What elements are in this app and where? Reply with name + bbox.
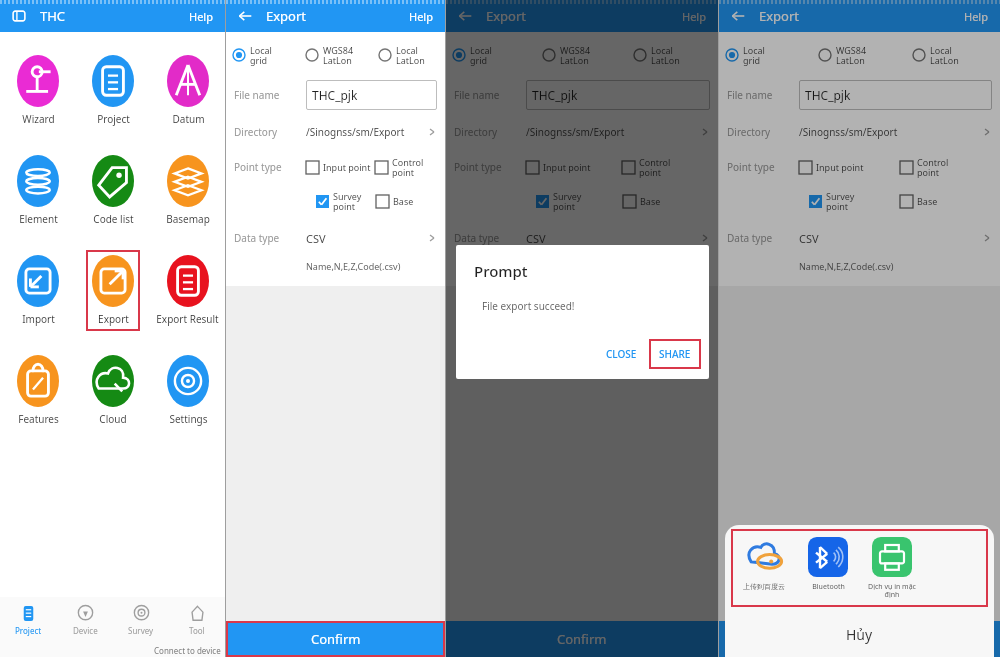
button[interactable]: Confirm [228, 623, 443, 655]
staticText: /Sinognss/sm/Export [306, 125, 405, 139]
staticText: Survey point [553, 190, 582, 212]
staticText: Input point [816, 161, 864, 173]
staticText: Project [97, 112, 130, 126]
staticText: Base [393, 195, 414, 207]
button[interactable]: Control point [900, 150, 992, 184]
button[interactable]: Back [454, 5, 476, 27]
button[interactable]: WGS84 LatLon [812, 38, 906, 72]
staticText: Element [19, 212, 58, 226]
button[interactable]: CLOSE [596, 341, 647, 367]
button[interactable]: Help [960, 5, 992, 28]
staticText: File name [234, 88, 306, 102]
button[interactable]: Directory [727, 118, 992, 146]
button[interactable]: Features [11, 350, 65, 431]
button[interactable]: Data type [727, 224, 992, 252]
button[interactable]: Input point [306, 150, 375, 184]
button[interactable]: Survey point [316, 184, 376, 218]
staticText: Name,N,E,Z,Code(.csv) [306, 260, 401, 272]
staticText: Tool [189, 625, 205, 636]
button[interactable]: Device [57, 597, 113, 643]
staticText: Survey point [826, 190, 855, 212]
staticText: Dịch vụ in mặc định [868, 582, 916, 599]
button[interactable]: Local LatLon [906, 38, 1000, 72]
button[interactable]: Hủy [725, 611, 994, 657]
button[interactable]: THC_pjk [306, 80, 437, 110]
staticText: Control point [392, 156, 424, 178]
staticText: CSV [799, 231, 819, 246]
staticText: Input point [543, 161, 591, 173]
button[interactable]: Back [727, 5, 749, 27]
button[interactable]: Dịch vụ in mặc định [860, 537, 924, 599]
button[interactable]: Survey [113, 597, 169, 643]
button[interactable]: Tool [169, 597, 225, 643]
staticText: Control point [639, 156, 671, 178]
staticText: File export succeed! [482, 299, 575, 313]
button[interactable]: Base [900, 184, 992, 218]
button[interactable]: Help [678, 5, 710, 28]
staticText: WGS84 LatLon [836, 44, 867, 66]
staticText: Data type [234, 231, 306, 245]
button[interactable]: Project [86, 50, 140, 131]
staticText: Point type [727, 160, 799, 174]
button[interactable]: Bluetooth [796, 537, 860, 592]
button[interactable]: Survey point [536, 184, 623, 218]
button[interactable]: Wizard [11, 50, 65, 131]
button[interactable]: Survey point [809, 184, 900, 218]
button[interactable]: Control point [622, 150, 710, 184]
button[interactable]: Input point [799, 150, 900, 184]
button[interactable]: Base [376, 184, 437, 218]
button[interactable]: Control point [375, 150, 437, 184]
button[interactable]: Element [11, 150, 65, 231]
staticText: /Sinognss/sm/Export [799, 125, 898, 139]
button[interactable]: Input point [526, 150, 622, 184]
staticText: Survey [128, 625, 154, 636]
staticText: Point type [454, 160, 526, 174]
button[interactable]: Data type [454, 224, 710, 252]
button[interactable]: Local grid [446, 38, 536, 72]
button[interactable]: Local LatLon [372, 38, 445, 72]
button[interactable]: Basemap [160, 150, 216, 231]
staticText: THC [40, 7, 66, 25]
button[interactable]: Cloud [86, 350, 140, 431]
staticText: Local grid [250, 44, 272, 66]
staticText: Local LatLon [930, 44, 959, 66]
button[interactable]: Local grid [719, 38, 812, 72]
staticText: Point type [234, 160, 306, 174]
button[interactable]: 上传到百度云 [731, 537, 796, 591]
staticText: Project [15, 625, 42, 636]
button[interactable]: Project [0, 597, 57, 643]
staticText: CSV [306, 231, 326, 246]
button[interactable]: Code list [86, 150, 140, 231]
button[interactable]: Help [185, 5, 217, 28]
staticText: Local grid [743, 44, 765, 66]
button[interactable]: Confirm [446, 621, 718, 657]
staticText: Device [73, 625, 98, 636]
button[interactable]: Back [234, 5, 256, 27]
button[interactable]: Settings [161, 350, 215, 431]
button[interactable]: Export Result [150, 250, 225, 331]
staticText: Name,N,E,Z,Code(.csv) [799, 260, 894, 272]
button[interactable]: Data type [234, 224, 437, 252]
button[interactable]: SHARE [649, 339, 701, 369]
button[interactable]: Datum [161, 50, 215, 131]
button[interactable]: WGS84 LatLon [299, 38, 372, 72]
button[interactable]: THC_pjk [799, 80, 992, 110]
staticText: Bluetooth [812, 582, 845, 592]
button[interactable]: Help [405, 5, 437, 28]
button[interactable]: Directory [454, 118, 710, 146]
button[interactable]: Import [11, 250, 65, 331]
button[interactable]: Local grid [226, 38, 299, 72]
staticText: Data type [454, 231, 526, 245]
button[interactable]: Directory [234, 118, 437, 146]
button[interactable]: Local LatLon [627, 38, 718, 72]
button[interactable]: Export [86, 250, 140, 331]
button[interactable]: Base [623, 184, 710, 218]
button[interactable]: THC_pjk [526, 80, 710, 110]
staticText: Survey point [333, 190, 362, 212]
button[interactable]: WGS84 LatLon [536, 38, 627, 72]
staticText: Export [266, 7, 307, 25]
staticText: Local LatLon [651, 44, 680, 66]
button[interactable]: Menu [8, 5, 30, 27]
staticText: Basemap [166, 212, 210, 226]
staticText: File name [727, 88, 799, 102]
